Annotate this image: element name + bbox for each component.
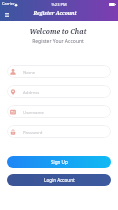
button[interactable]: Username	[7, 105, 111, 118]
staticText: Login Account	[44, 177, 75, 183]
staticText: 9:23 PM	[0, 2, 118, 7]
staticText: Register Account	[0, 10, 114, 17]
staticText: Name	[23, 69, 36, 75]
staticText: Password	[23, 129, 43, 135]
button[interactable]: Sign Up	[7, 156, 111, 168]
button[interactable]: Address	[7, 85, 111, 98]
button[interactable]: Name	[7, 65, 111, 78]
button[interactable]: Login Account	[7, 174, 111, 186]
button[interactable]: Password	[7, 125, 111, 138]
staticText: Welcome to Chat	[0, 27, 117, 36]
staticText: Register Your Account	[0, 38, 117, 45]
staticText: Carrier	[2, 1, 15, 6]
staticText: Address	[23, 89, 40, 95]
staticText: Sign Up	[51, 159, 68, 165]
button[interactable]: Menu	[1, 9, 13, 21]
staticText: Username	[23, 109, 44, 115]
